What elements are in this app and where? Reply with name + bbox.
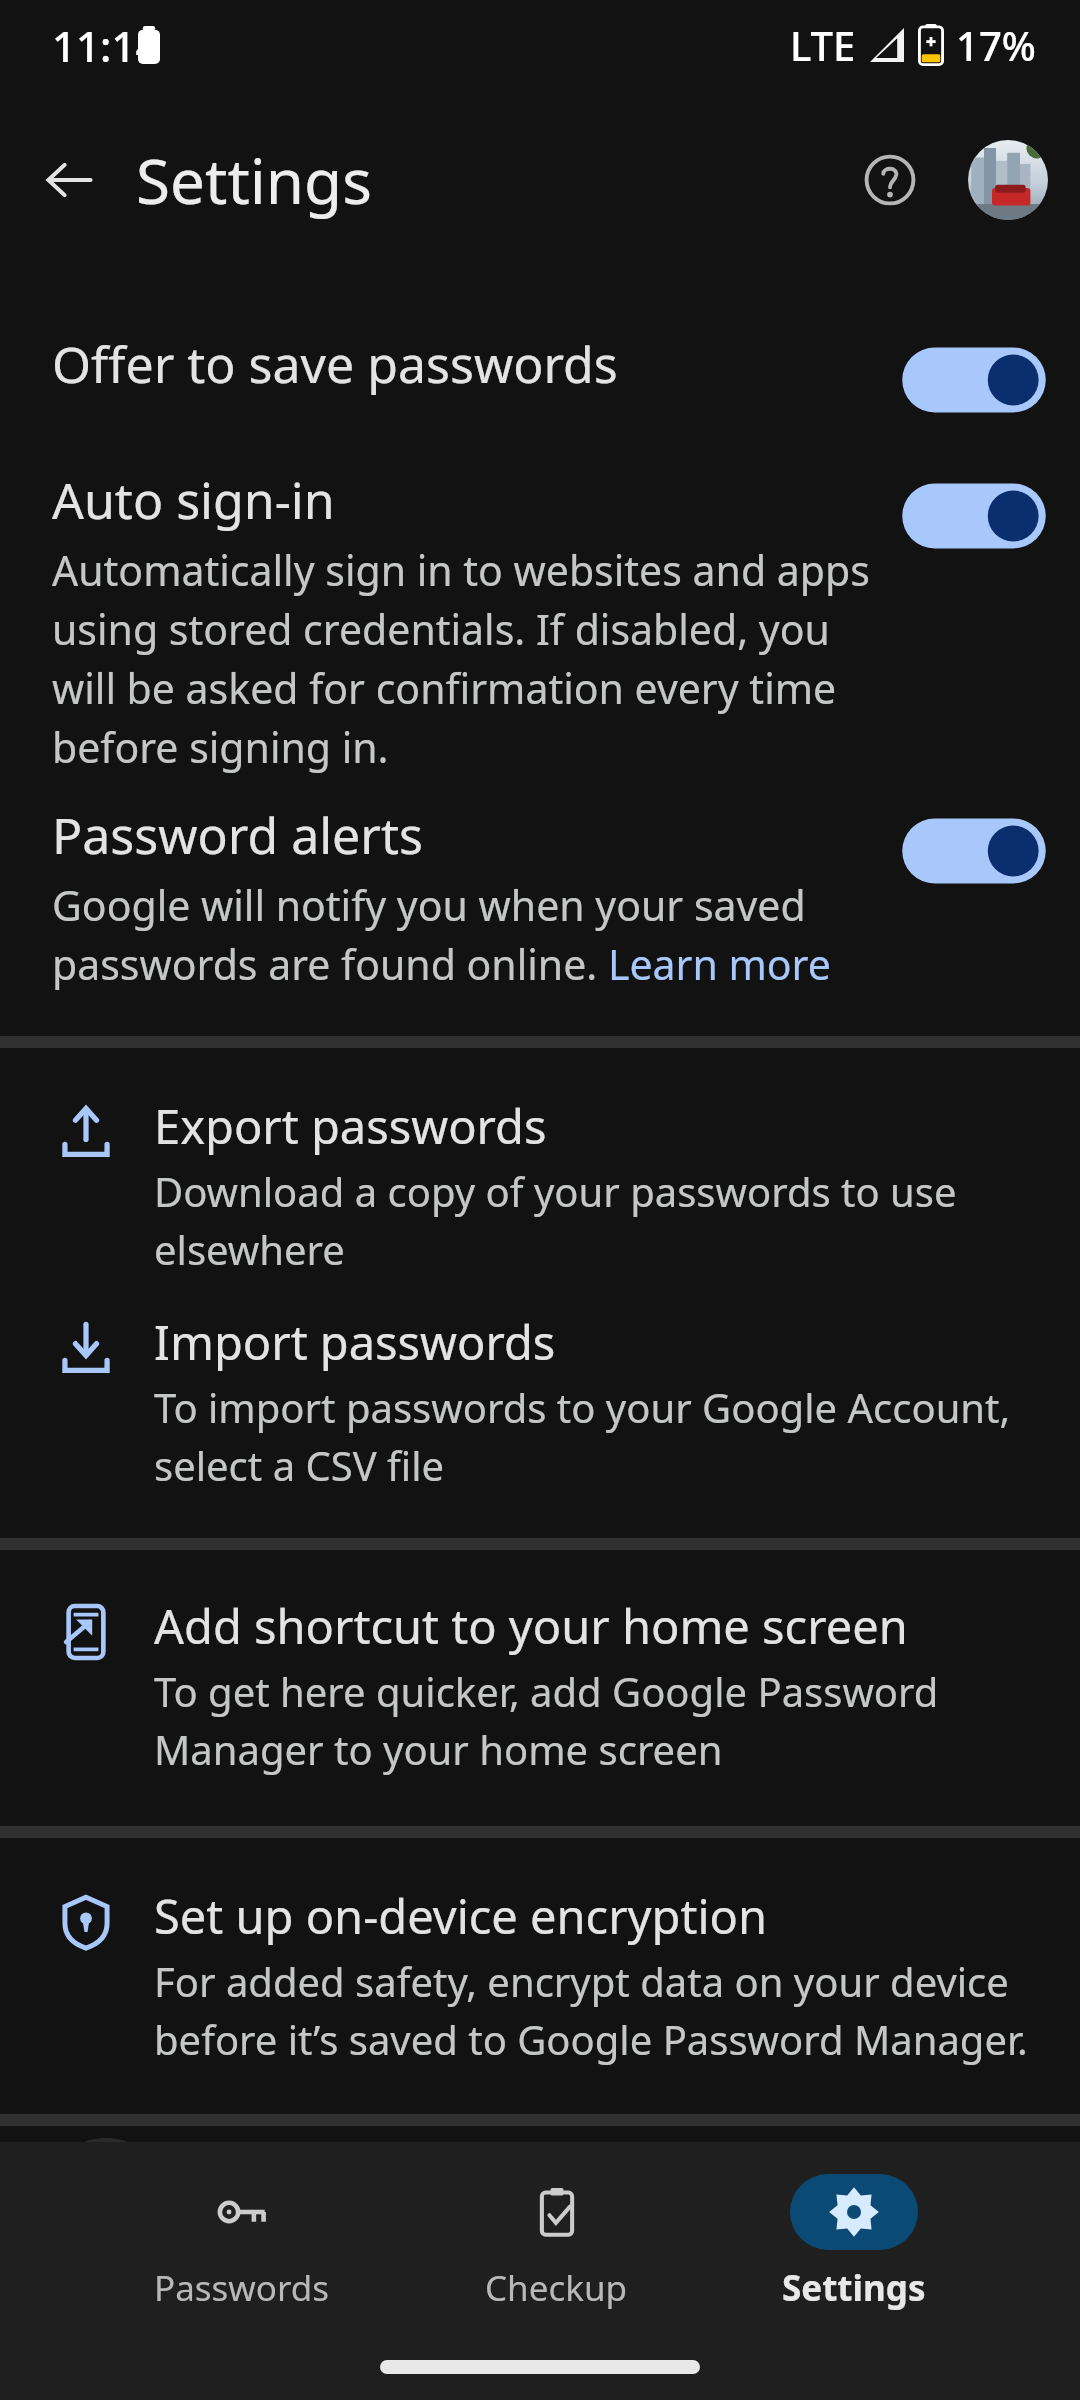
staticText: 11:14 [52,17,160,74]
button[interactable]: Account [968,140,1048,220]
staticText: Export passwords [154,1094,547,1158]
staticText: LTE [790,18,856,72]
staticText: You’ve chosen not to save passwords for … [52,2277,1040,2370]
staticText: Settings [782,2264,926,2312]
staticText: For added safety, encrypt data on your d… [154,1954,1050,2066]
staticText: To import passwords to your Google Accou… [154,1380,1050,1492]
button[interactable]: Toggle [896,472,1052,560]
button[interactable]: Password alerts [0,797,1080,1036]
staticText: Set up on-device encryption [154,1884,768,1948]
button[interactable]: 26 declined sites and apps [0,2126,1080,2400]
staticText: To get here quicker, add Google Password… [154,1664,1050,1776]
other: Export passwords [46,1092,126,1172]
staticText: Add shortcut to your home screen [154,1594,908,1658]
staticText: 17% [956,18,1036,72]
staticText: Google will notify you when your saved p… [52,877,872,992]
staticText: Automatically sign in to websites and ap… [52,542,872,775]
button[interactable]: Auto sign-in [0,458,1080,797]
staticText: Checkup [485,2264,628,2312]
staticText: Password alerts [52,801,423,869]
button[interactable]: Passwords [154,2164,330,2322]
other: Add shortcut to your home screen [46,1592,126,1672]
staticText: Offer to save passwords [52,330,618,398]
staticText: Settings [136,138,372,222]
staticText: Import passwords [154,1310,556,1374]
other: Import passwords [46,1308,126,1388]
staticText: Download a copy of your passwords to use… [154,1164,1050,1276]
button[interactable]: Set up on-device encryption [0,1838,1080,2114]
other: Set up on-device encryption [46,1882,126,1962]
staticText: Passwords [154,2264,330,2312]
button[interactable]: Export passwords [0,1048,1080,1298]
button[interactable]: Toggle [896,336,1052,424]
button[interactable]: Toggle [896,807,1052,895]
button[interactable]: Offer to save passwords [0,270,1080,458]
button[interactable]: Settings [782,2164,926,2322]
button[interactable]: Back [22,132,118,228]
button[interactable]: Help [846,136,934,224]
staticText: Auto sign-in [52,466,335,534]
button[interactable]: Add shortcut to your home screen [0,1550,1080,1826]
staticText: 26 declined sites and apps [52,2184,695,2255]
button[interactable]: Import passwords [0,1298,1080,1538]
button[interactable]: Checkup [485,2164,628,2322]
